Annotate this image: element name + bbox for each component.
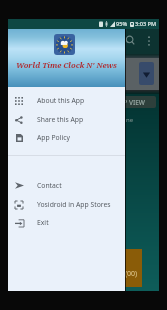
button[interactable]: Exit [8,213,125,232]
staticText: MAP VIEW [113,98,145,107]
staticText: Contact [37,181,62,190]
button[interactable]: More options [145,35,153,47]
staticText: 95% [116,20,128,28]
button[interactable]: About this App [8,91,125,110]
button[interactable]: Share this App [8,110,125,129]
staticText: Share this App [37,115,84,124]
staticText: About this App [37,96,85,105]
button[interactable]: Search [125,35,136,46]
button[interactable]: App Policy [8,128,125,147]
button[interactable] [139,62,154,85]
staticText: Exit [37,218,49,227]
staticText: 3:03 PM [135,20,157,28]
button[interactable]: Yosidroid in App Stores [8,195,125,214]
staticText: App Policy [37,133,70,142]
staticText: (00) [125,269,138,279]
staticText: ne [126,116,134,124]
button[interactable]: MAP VIEW [101,96,156,108]
staticText: Yosidroid in App Stores [37,200,111,209]
button[interactable]: Contact [8,176,125,195]
staticText: World Time Clock N' News [8,60,125,70]
